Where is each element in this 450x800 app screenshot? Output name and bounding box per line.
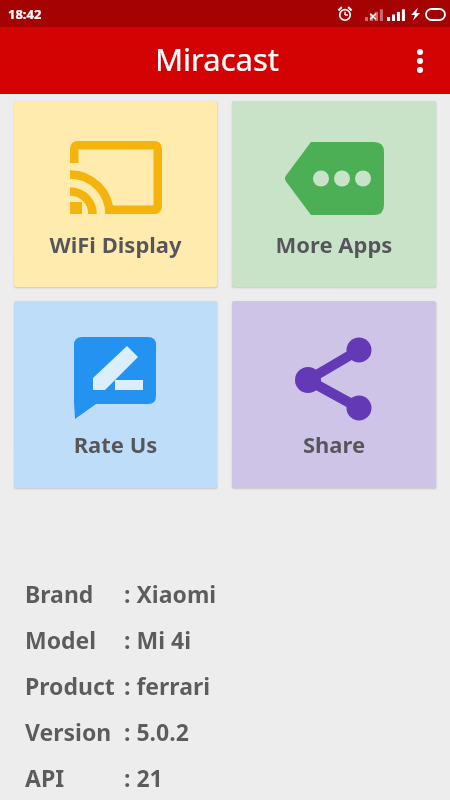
staticText: Model: [25, 624, 97, 655]
staticText: Brand: [25, 578, 94, 609]
staticText: : ferrari: [124, 670, 211, 701]
staticText: WiFi Display: [14, 229, 217, 259]
staticText: API: [25, 762, 65, 793]
staticText: Version: [25, 716, 112, 747]
button[interactable]: Share: [232, 301, 436, 488]
staticText: : Mi 4i: [124, 624, 192, 655]
staticText: Miracast: [155, 38, 279, 80]
staticText: Share: [232, 429, 436, 459]
button[interactable]: More Apps: [232, 101, 436, 287]
staticText: : Xiaomi: [124, 578, 217, 609]
staticText: : 5.0.2: [124, 716, 189, 747]
staticText: More Apps: [232, 229, 436, 259]
staticText: 18:42: [8, 5, 42, 23]
staticText: : 21: [124, 762, 163, 793]
button[interactable]: Rate Us: [14, 301, 217, 488]
button[interactable]: More options: [396, 27, 444, 94]
staticText: Product: [25, 670, 115, 701]
staticText: Rate Us: [14, 429, 217, 459]
button[interactable]: WiFi Display: [14, 101, 217, 287]
